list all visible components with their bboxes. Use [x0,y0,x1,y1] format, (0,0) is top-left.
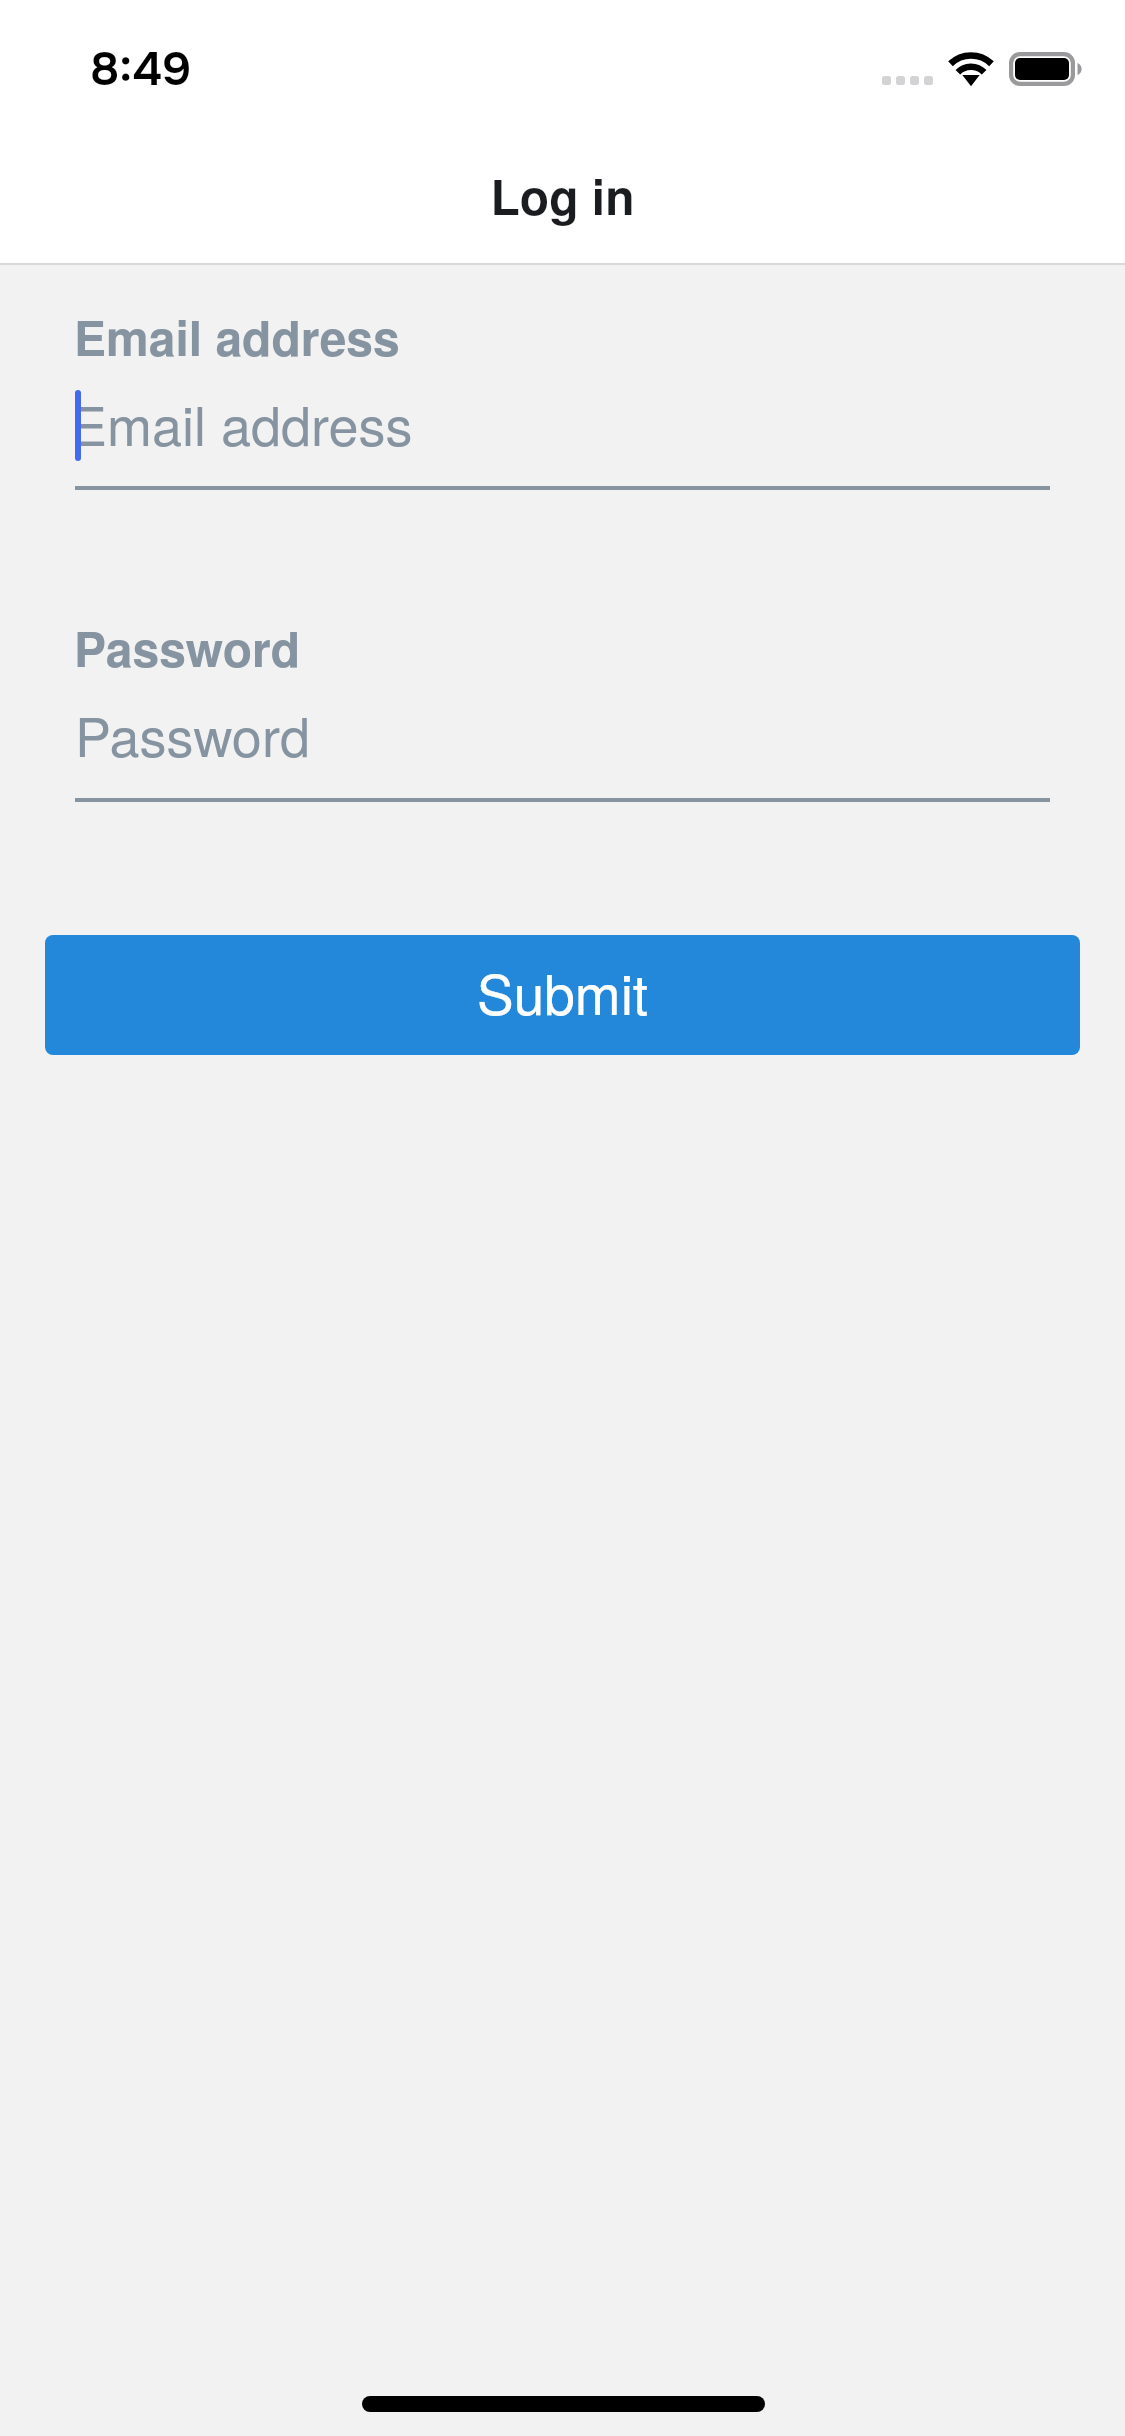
staticText: Email address [71,384,413,461]
staticText: Password [74,613,301,682]
staticText: Email address [74,302,400,371]
button[interactable]: Submit [45,935,1080,1055]
staticText: Log in [0,161,1125,230]
other: Battery full [1009,52,1083,86]
staticText: Submit [477,952,649,1031]
button[interactable]: Email address [75,302,1050,379]
staticText: 8:49 [90,39,192,99]
staticText: Password [75,695,310,772]
button[interactable]: Password [75,613,1050,690]
other: Cellular signal [882,76,933,85]
other: Wi-Fi [948,51,994,86]
